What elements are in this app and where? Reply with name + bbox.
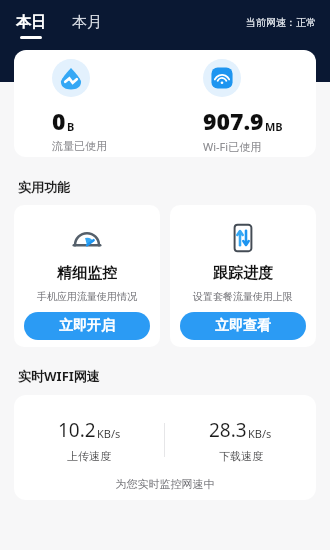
staticText: MB	[265, 119, 283, 134]
staticText: 跟踪进度	[213, 264, 273, 283]
other: 精细监控	[72, 223, 102, 253]
staticText: KB/s	[97, 426, 121, 441]
staticText: 907.9	[203, 105, 264, 136]
staticText: 实时WIFI网速	[18, 367, 100, 385]
button[interactable]: 本日	[14, 13, 48, 39]
staticText: 本日	[16, 13, 46, 32]
staticText: 上传速度	[67, 449, 111, 463]
button[interactable]: 跟踪进度	[170, 205, 316, 347]
staticText: 立即查看	[215, 317, 271, 335]
staticText: B	[67, 119, 75, 134]
staticText: 流量已使用	[52, 139, 107, 153]
button[interactable]: 本月	[70, 13, 104, 32]
staticText: KB/s	[248, 426, 272, 441]
staticText: 下载速度	[219, 449, 263, 463]
staticText: 精细监控	[57, 264, 117, 283]
staticText: 28.3	[209, 417, 247, 443]
button[interactable]: 立即查看	[180, 312, 306, 340]
staticText: 立即开启	[59, 317, 115, 335]
staticText: 当前网速：正常	[246, 16, 316, 29]
staticText: 0	[52, 105, 66, 136]
staticText: 为您实时监控网速中	[14, 477, 316, 491]
button[interactable]: 立即开启	[24, 312, 150, 340]
staticText: 实用功能	[18, 179, 70, 195]
staticText: 手机应用流量使用情况	[37, 290, 137, 303]
staticText: Wi-Fi已使用	[203, 139, 262, 154]
staticText: 10.2	[58, 417, 96, 443]
button[interactable]: 精细监控	[14, 205, 160, 347]
staticText: 本月	[72, 13, 102, 32]
other: 跟踪进度	[228, 223, 258, 253]
staticText: 设置套餐流量使用上限	[193, 290, 293, 303]
